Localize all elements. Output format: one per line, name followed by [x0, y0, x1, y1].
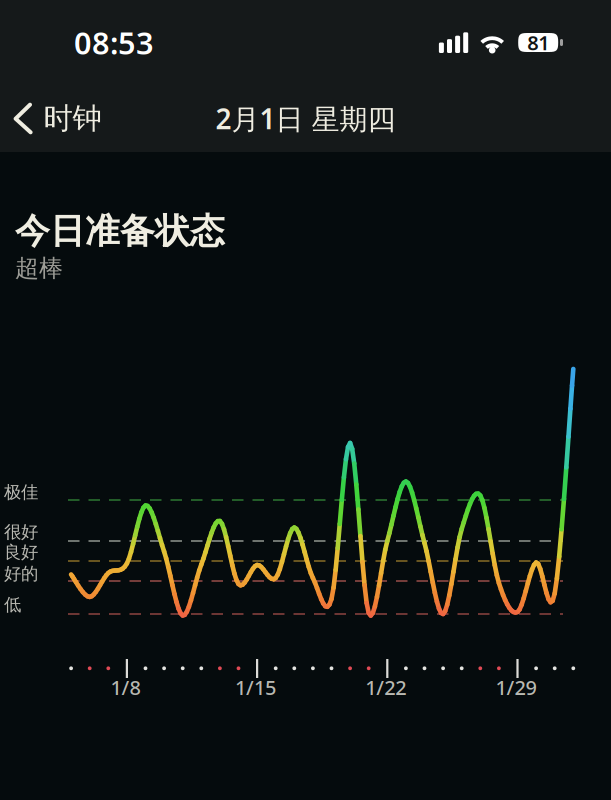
staticText: 1/15 [235, 674, 276, 701]
staticText: 超棒 [15, 254, 63, 283]
staticText: 低 [4, 594, 21, 615]
staticText: 极佳 [4, 481, 38, 503]
staticText: 81 [527, 29, 549, 56]
staticText: 2月1日 星期四 [215, 100, 395, 137]
staticText: 1/29 [495, 674, 536, 701]
staticText: 今日准备状态 [15, 210, 225, 253]
staticText: 很好 [4, 521, 38, 543]
staticText: 良好 [4, 542, 38, 563]
staticText: 时钟 [44, 100, 102, 136]
staticText: 好的 [4, 563, 38, 584]
staticText: 08:53 [74, 22, 154, 63]
staticText: 1/8 [110, 674, 140, 701]
button[interactable]: 时钟 [0, 90, 114, 146]
staticText: 1/22 [365, 674, 406, 701]
